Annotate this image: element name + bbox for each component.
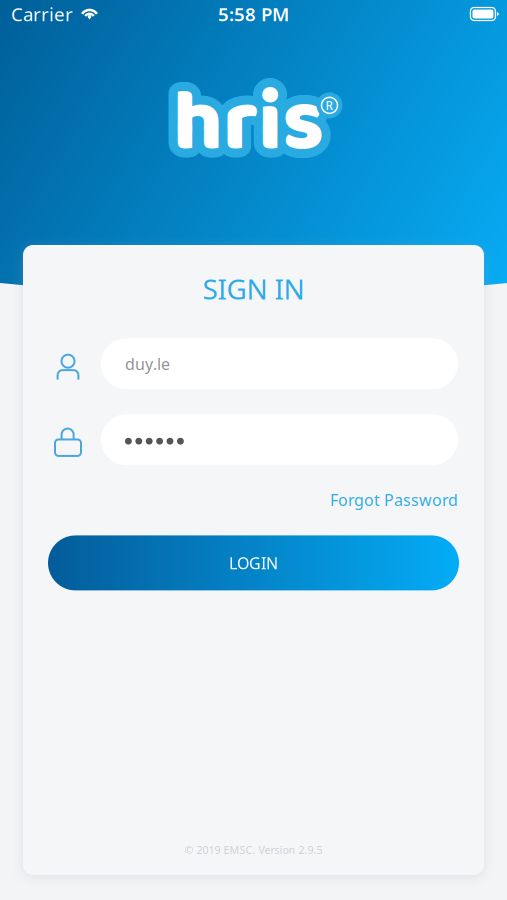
- staticText: hris: [165, 60, 316, 197]
- staticText: hris: [179, 50, 330, 186]
- staticText: hris: [181, 51, 332, 188]
- staticText: hris: [176, 52, 327, 189]
- button[interactable]: [101, 414, 458, 465]
- button[interactable]: LOGIN: [48, 535, 459, 590]
- staticText: hris: [178, 58, 329, 195]
- staticText: hris: [182, 58, 333, 195]
- staticText: hris: [173, 47, 324, 184]
- staticText: hris: [168, 58, 319, 195]
- staticText: hris: [173, 65, 324, 202]
- staticText: hris: [175, 65, 326, 201]
- staticText: © 2019 EMSC. Version 2.9.5: [184, 843, 322, 857]
- staticText: hris: [175, 61, 326, 197]
- staticText: LOGIN: [229, 552, 278, 573]
- staticText: hris: [175, 47, 326, 184]
- staticText: hris: [179, 62, 330, 199]
- staticText: hris: [176, 59, 327, 196]
- staticText: hris: [167, 50, 318, 186]
- button[interactable]: duy.le: [101, 338, 458, 389]
- staticText: hris: [168, 64, 319, 200]
- staticText: hris: [177, 48, 328, 185]
- staticText: hris: [171, 51, 322, 188]
- staticText: hris: [173, 51, 324, 188]
- staticText: hris: [168, 48, 319, 185]
- staticText: hris: [173, 61, 324, 198]
- staticText: hris: [168, 56, 319, 193]
- staticText: hris: [175, 51, 326, 188]
- button[interactable]: Forgot Password: [330, 486, 458, 513]
- staticText: hris: [171, 61, 322, 197]
- staticText: hris: [168, 54, 319, 191]
- staticText: hris: [165, 51, 316, 188]
- staticText: hris: [177, 64, 328, 200]
- staticText: hris: [164, 56, 315, 193]
- staticText: hris: [167, 62, 318, 199]
- staticText: Carrier: [11, 2, 73, 26]
- staticText: hris: [181, 60, 332, 197]
- staticText: R: [325, 97, 333, 113]
- staticText: hris: [173, 56, 324, 193]
- staticText: SIGN IN: [202, 270, 304, 307]
- staticText: hris: [182, 54, 333, 190]
- staticText: hris: [171, 47, 322, 184]
- staticText: Forgot Password: [330, 489, 458, 510]
- staticText: 5:58 PM: [218, 2, 289, 26]
- staticText: hris: [182, 56, 333, 193]
- staticText: hris: [164, 58, 315, 195]
- staticText: duy.le: [125, 353, 170, 374]
- staticText: hris: [178, 54, 329, 191]
- staticText: hris: [171, 65, 322, 201]
- staticText: hris: [169, 52, 320, 189]
- staticText: hris: [178, 56, 329, 193]
- staticText: hris: [169, 59, 320, 196]
- staticText: hris: [164, 54, 315, 190]
